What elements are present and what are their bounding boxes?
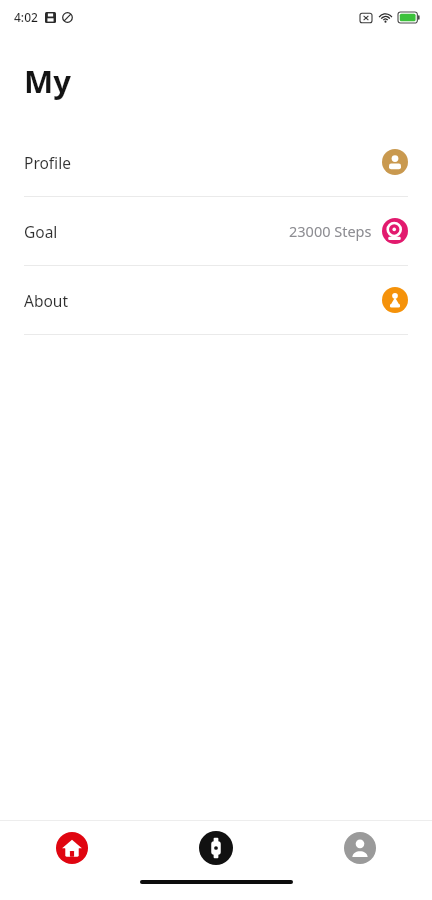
staticText: About bbox=[24, 290, 68, 311]
button[interactable]: Device bbox=[144, 821, 288, 875]
staticText: Goal bbox=[24, 221, 58, 242]
staticText: 23000 Steps bbox=[289, 221, 372, 241]
staticText: My bbox=[24, 60, 71, 102]
staticText: Profile bbox=[24, 152, 71, 173]
button[interactable]: Me bbox=[288, 821, 432, 875]
button[interactable]: Home bbox=[0, 821, 144, 875]
button[interactable]: About bbox=[0, 266, 432, 334]
other: Goal bbox=[382, 218, 408, 244]
button[interactable]: Profile bbox=[0, 128, 432, 196]
other: About bbox=[382, 287, 408, 313]
other: Profile bbox=[382, 149, 408, 175]
staticText: 4:02 bbox=[14, 9, 38, 25]
button[interactable]: Goal bbox=[0, 197, 432, 265]
